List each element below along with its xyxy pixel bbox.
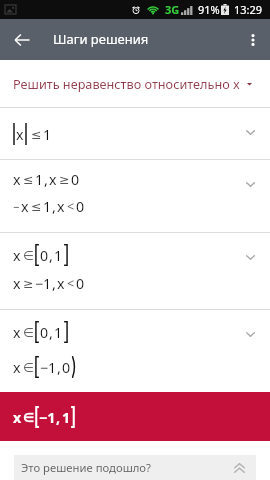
staticText: ,: [56, 408, 61, 427]
staticText: x: [21, 197, 29, 216]
staticText: 1: [54, 323, 63, 342]
button[interactable]: Решить неравенство относительно x: [0, 60, 270, 107]
button[interactable]: Expand step: [243, 125, 257, 139]
staticText: 91%: [198, 2, 220, 17]
staticText: <: [67, 198, 75, 215]
button[interactable]: Это решение подошло?: [14, 455, 256, 480]
staticText: ,: [44, 170, 48, 189]
staticText: ,: [49, 323, 53, 342]
staticText: ≤: [23, 172, 34, 187]
staticText: 0: [76, 197, 85, 216]
button[interactable]: Expand step: [243, 250, 257, 264]
staticText: −1: [39, 408, 56, 427]
staticText: ∈: [23, 248, 34, 263]
staticText: 0: [40, 246, 49, 265]
staticText: ≤: [31, 127, 42, 142]
button[interactable]: Back: [0, 19, 41, 60]
staticText: 1: [54, 246, 63, 265]
staticText: x: [57, 274, 65, 293]
button[interactable]: x: [0, 160, 270, 232]
staticText: ,: [52, 274, 56, 293]
staticText: x: [13, 274, 21, 293]
button[interactable]: x: [0, 310, 270, 392]
button[interactable]: x: [0, 233, 270, 309]
staticText: 1: [62, 408, 71, 427]
staticText: ∈: [23, 360, 34, 375]
staticText: Это решение подошло?: [21, 460, 151, 475]
staticText: −1: [40, 358, 57, 377]
staticText: 1: [43, 197, 52, 216]
staticText: x: [13, 408, 22, 427]
staticText: x: [13, 170, 21, 189]
staticText: Решить неравенство относительно x: [13, 75, 240, 92]
staticText: x: [13, 246, 21, 265]
staticText: 13:29: [234, 2, 263, 17]
button[interactable]: x: [0, 108, 270, 159]
staticText: 3G: [165, 2, 180, 17]
staticText: x: [16, 125, 24, 144]
staticText: 0: [71, 170, 80, 189]
staticText: Шаги решения: [53, 30, 149, 48]
button[interactable]: Expand step: [243, 327, 257, 341]
staticText: ,: [49, 246, 53, 265]
button[interactable]: x: [0, 392, 270, 441]
staticText: x: [57, 197, 65, 216]
staticText: 1: [43, 125, 52, 144]
staticText: ∈: [23, 325, 34, 340]
staticText: 0: [40, 323, 49, 342]
staticText: 0: [62, 358, 71, 377]
staticText: ≥: [23, 276, 34, 291]
staticText: 0: [76, 274, 85, 293]
staticText: −: [13, 199, 20, 214]
staticText: ∈: [23, 410, 35, 425]
staticText: ≤: [31, 199, 42, 214]
button[interactable]: More options: [229, 19, 270, 60]
staticText: ,: [57, 358, 61, 377]
staticText: x: [13, 323, 21, 342]
staticText: <: [67, 275, 75, 292]
staticText: x: [49, 170, 57, 189]
staticText: 1: [35, 170, 44, 189]
staticText: x: [13, 358, 21, 377]
staticText: ≥: [59, 172, 70, 187]
button[interactable]: Expand step: [243, 177, 257, 191]
staticText: −1: [35, 274, 52, 293]
staticText: ,: [52, 197, 56, 216]
